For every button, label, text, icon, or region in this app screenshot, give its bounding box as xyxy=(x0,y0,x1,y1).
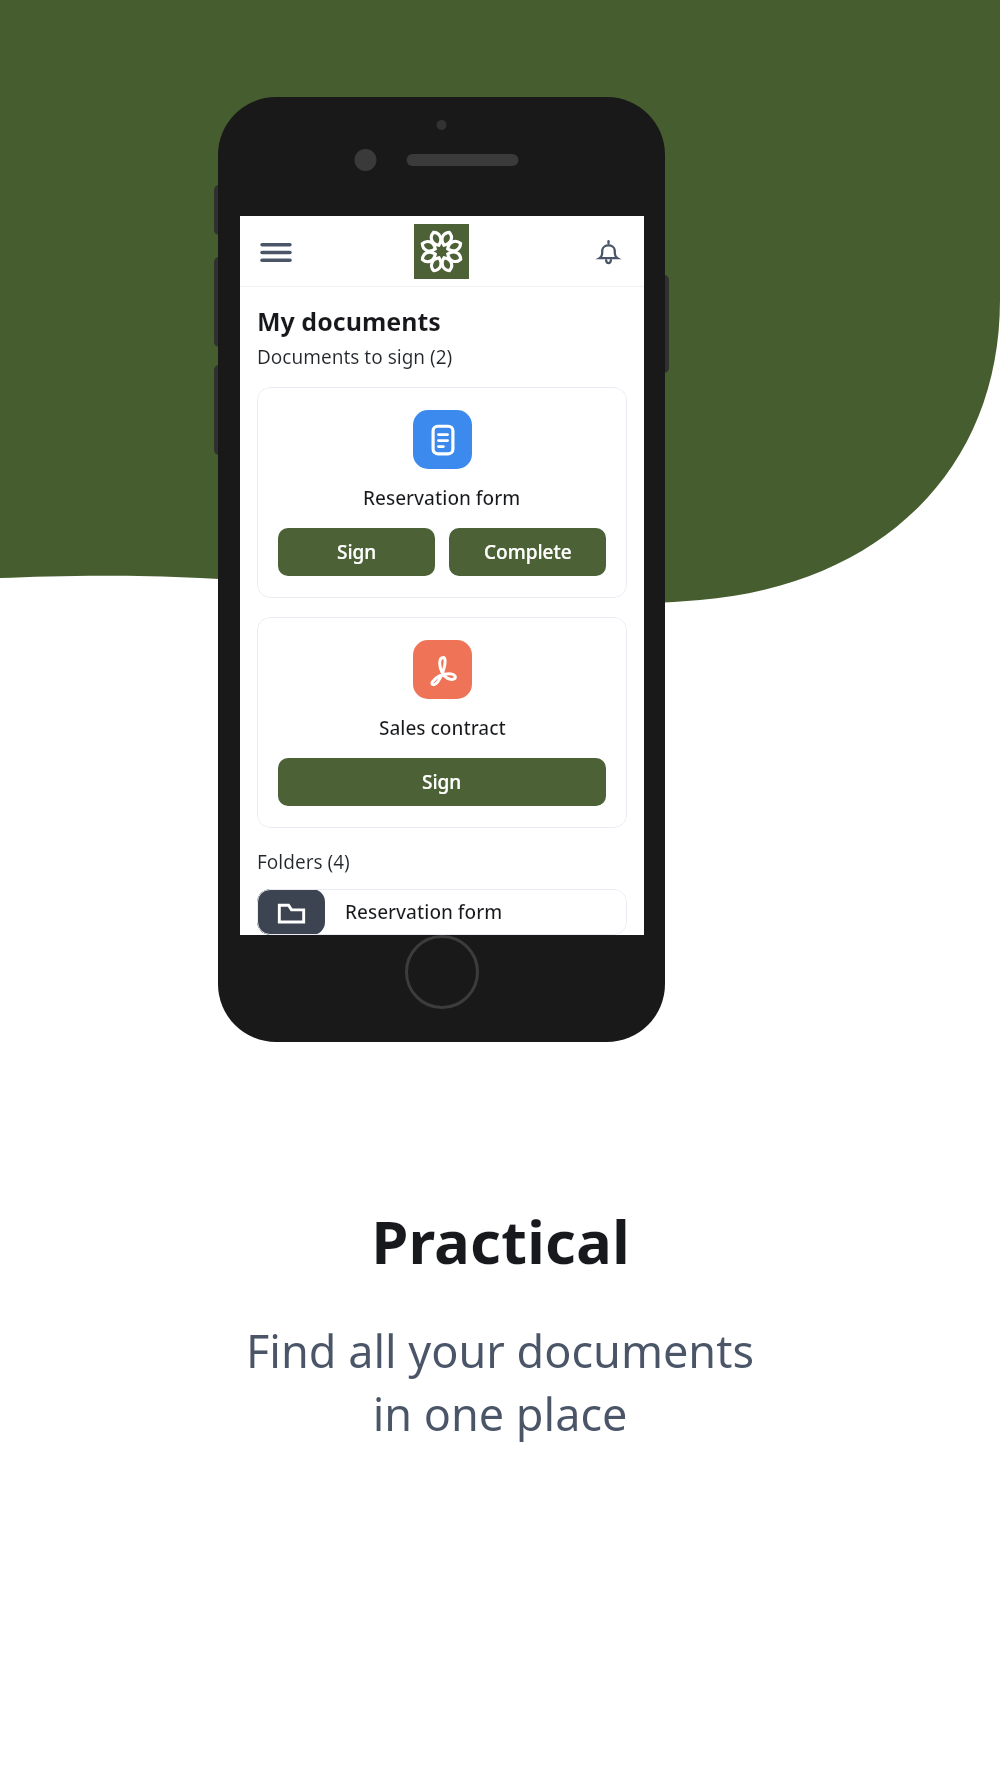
staticText: Documents to sign (2) xyxy=(257,344,453,370)
staticText: My documents xyxy=(257,304,441,338)
button[interactable]: Sign xyxy=(278,528,435,576)
button[interactable]: Reservation form xyxy=(257,889,627,935)
button[interactable]: Sales contract xyxy=(257,617,627,828)
staticText: Sales contract xyxy=(379,715,506,741)
staticText: Reservation form xyxy=(345,899,503,925)
staticText: Practical xyxy=(371,1200,630,1282)
staticText: Sign xyxy=(337,539,377,565)
button[interactable]: Home xyxy=(405,935,479,1009)
staticText: Folders (4) xyxy=(257,849,350,875)
button[interactable]: Notifications xyxy=(585,229,631,275)
staticText: Complete xyxy=(484,539,572,565)
button[interactable]: Menu xyxy=(253,229,299,275)
staticText: Sign xyxy=(422,769,462,795)
button[interactable]: Sign xyxy=(278,758,606,806)
staticText: Find all your documents in one place xyxy=(246,1320,754,1445)
staticText: Reservation form xyxy=(363,485,521,511)
button[interactable]: Complete xyxy=(449,528,606,576)
button[interactable]: Reservation form xyxy=(257,387,627,598)
